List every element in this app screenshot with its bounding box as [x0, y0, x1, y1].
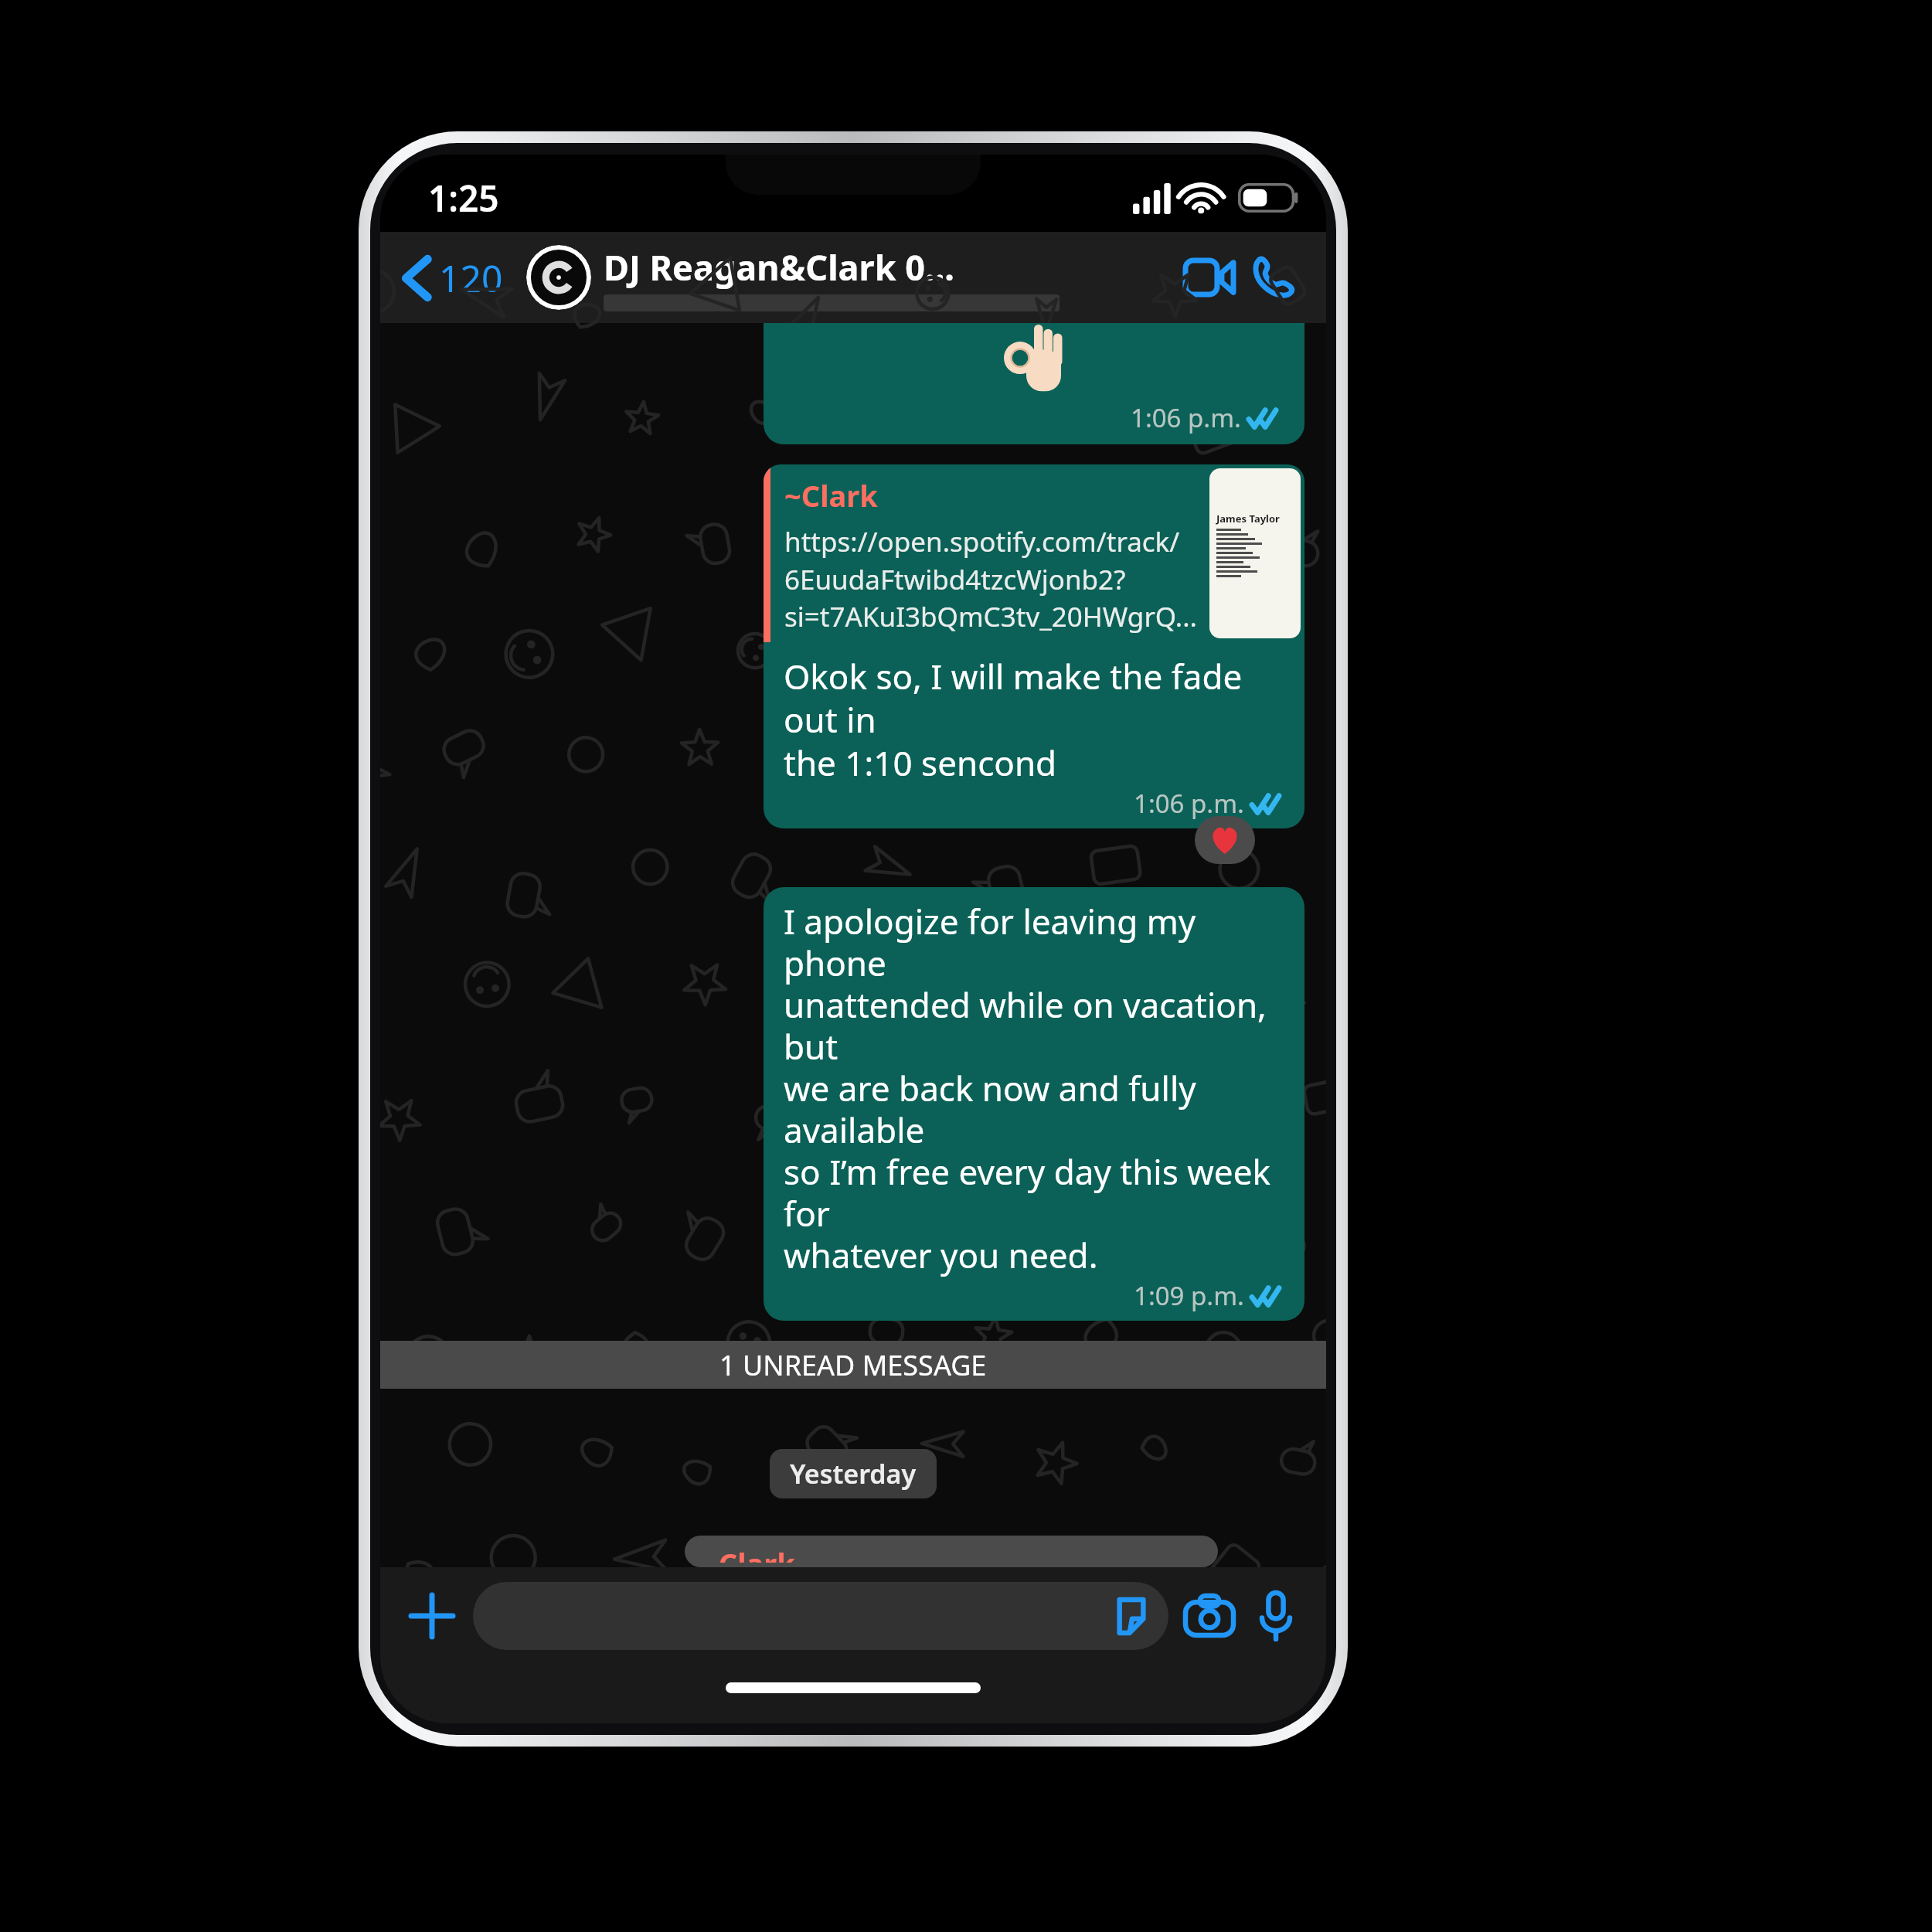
staticText: ~Clark [784, 475, 878, 515]
button[interactable]: DJ Reagan&Clark 0... [604, 243, 1173, 311]
staticText: Yesterday [790, 1456, 917, 1492]
button[interactable]: Voice call [1243, 247, 1303, 308]
button[interactable]: Group photo [526, 245, 591, 310]
button[interactable]: I apologize for leaving my phone unatten… [764, 887, 1304, 1321]
button[interactable]: Camera [1178, 1584, 1241, 1648]
button[interactable]: ~Clark [685, 1536, 1218, 1567]
staticText: 1 UNREAD MESSAGE [719, 1346, 987, 1384]
staticText: 1:25 [428, 174, 499, 223]
staticText: 120 [439, 253, 503, 303]
staticText: 1:09 p.m. [1134, 1278, 1244, 1313]
button[interactable]: Voice message [1244, 1584, 1308, 1648]
other: Back [403, 257, 430, 300]
staticText: James Taylor [1216, 512, 1280, 526]
staticText: Okok so, I will make the fade out in the… [784, 653, 1287, 786]
staticText: https://open.spotify.com/track/ 6EuudaFt… [784, 523, 1197, 634]
staticText: I apologize for leaving my phone unatten… [784, 898, 1287, 1278]
staticText: 1:06 p.m. [1134, 786, 1244, 821]
button[interactable]: Back [397, 245, 509, 311]
button[interactable]: 1:06 p.m. [764, 323, 1304, 444]
button[interactable]: Heart reaction [1195, 816, 1255, 864]
button[interactable]: ~Clark [764, 464, 1304, 642]
button[interactable]: Okok so, I will make the fade out in the… [764, 642, 1304, 828]
staticText: 1:06 p.m. [1131, 400, 1241, 435]
button[interactable]: Attach [399, 1583, 465, 1649]
button[interactable]: Video call [1179, 247, 1240, 308]
button[interactable]: Stickers [473, 1582, 1168, 1650]
staticText: ~Clark [702, 1543, 795, 1563]
button[interactable]: Yesterday [770, 1449, 937, 1498]
button[interactable]: Stickers [1110, 1594, 1153, 1638]
staticText: DJ Reagan&Clark 0... [604, 243, 954, 291]
